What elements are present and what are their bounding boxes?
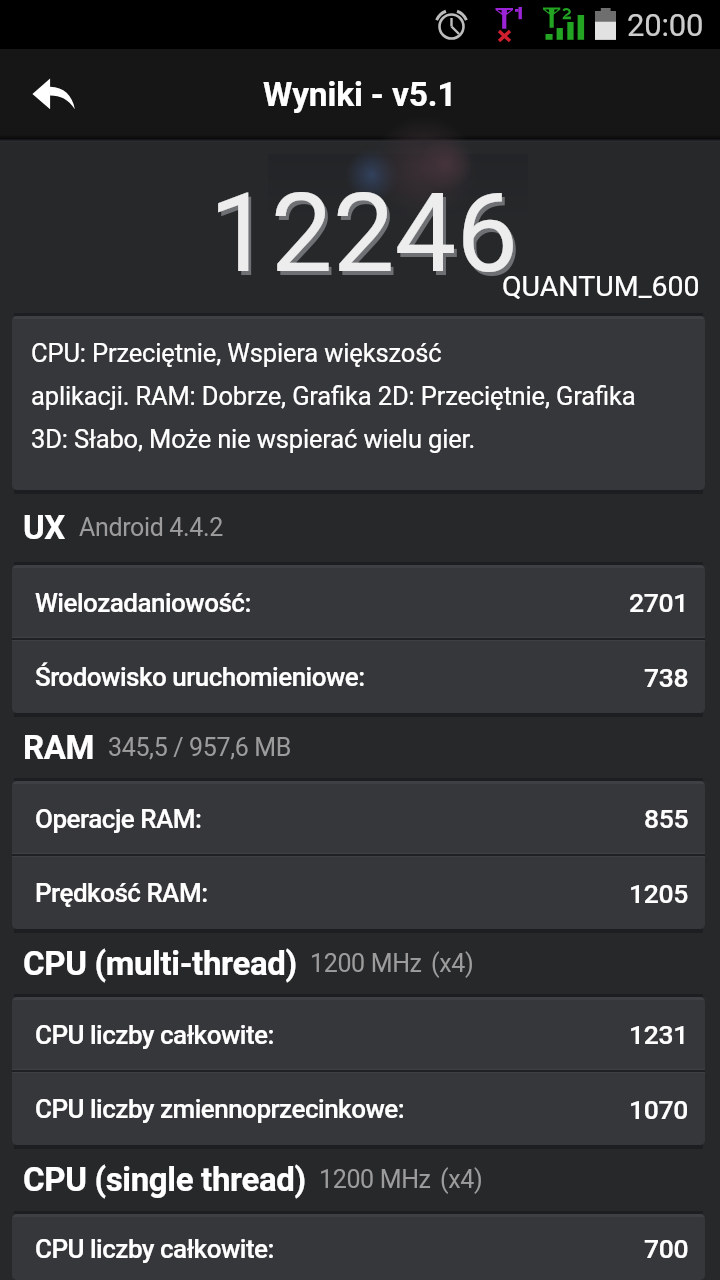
button[interactable]: CPU liczby całkowite: [12,1000,705,1069]
button[interactable]: Środowisko uruchomieniowe: [12,641,705,713]
staticText: 20:00 [627,7,704,43]
staticText: Wielozadaniowość: [35,588,251,618]
staticText: 12246 [209,169,519,298]
staticText: (x4) [431,949,474,978]
button[interactable]: CPU liczby zmiennoprzecinkowe: [12,1073,705,1145]
staticText: 738 [644,662,689,693]
staticText: 12246 [212,173,522,302]
staticText: 2701 [629,587,689,618]
staticText: Prędkość RAM: [35,878,208,908]
staticText: Operacje RAM: [35,804,202,834]
staticText: QUANTUM_600 [502,270,700,303]
staticText: CPU liczby całkowite: [35,1020,274,1050]
staticText: 3D: Słabo, Może nie wspierać wielu gier. [31,424,476,454]
staticText: UX [23,508,66,547]
staticText: 1231 [629,1019,689,1050]
staticText: Wyniki - v5.1 [263,75,457,114]
staticText: (x4) [440,1165,483,1194]
staticText: CPU: Przeciętnie, Wspiera większość [31,338,442,368]
staticText: 700 [644,1233,689,1264]
button[interactable]: Back [10,62,78,130]
staticText: CPU liczby zmiennoprzecinkowe: [35,1094,405,1124]
staticText: 345,5 / 957,6 MB [108,733,291,762]
button[interactable]: Operacje RAM: [12,784,705,853]
staticText: 1070 [629,1094,689,1125]
staticText: CPU liczby całkowite: [35,1234,274,1264]
button[interactable]: Wielozadaniowość: [12,568,705,637]
button[interactable]: CPU liczby całkowite: [12,1217,705,1280]
staticText: RAM [23,728,95,767]
staticText: CPU (single thread) [23,1160,306,1199]
staticText: Środowisko uruchomieniowe: [35,662,365,692]
staticText: CPU (multi-thread) [23,944,297,983]
staticText: Android 4.4.2 [79,513,223,542]
staticText: 855 [644,803,689,834]
staticText: 1205 [629,878,689,909]
staticText: aplikacji. RAM: Dobrze, Grafika 2D: Prze… [31,381,636,411]
staticText: 1200 MHz [319,1165,431,1194]
staticText: 1200 MHz [310,949,422,978]
button[interactable]: Prędkość RAM: [12,857,705,929]
